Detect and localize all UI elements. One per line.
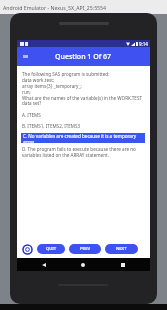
button[interactable]: Open navigation menu bbox=[19, 50, 32, 63]
staticText: Question 1 Of 67 bbox=[55, 52, 111, 62]
staticText: NEXT bbox=[116, 246, 127, 252]
staticText: D. The program fails to execute because … bbox=[22, 146, 146, 159]
button[interactable]: Bookmark question bbox=[21, 243, 33, 255]
staticText: run; bbox=[22, 89, 31, 95]
button[interactable]: Home bbox=[76, 258, 90, 271]
staticText: The following SAS program is submitted: bbox=[22, 71, 110, 77]
button[interactable]: PREV bbox=[69, 244, 101, 254]
staticText: QUIT bbox=[46, 246, 57, 252]
button[interactable]: NEXT bbox=[105, 244, 138, 254]
staticText: data work.test; bbox=[22, 77, 55, 83]
staticText: array items{3} _temporary_; bbox=[22, 83, 82, 89]
staticText: PREV bbox=[80, 246, 91, 252]
staticText: What are the names of the variable(s) in… bbox=[22, 95, 146, 106]
staticText: Android Emulator - Nexus_5X_API_25:5554 bbox=[3, 4, 106, 11]
button[interactable]: A. ITEMS bbox=[22, 112, 41, 118]
button[interactable]: B. ITEMS1, ITEMS2, ITEMS3 bbox=[22, 123, 81, 129]
button[interactable]: Recent apps bbox=[116, 258, 130, 271]
button[interactable]: D. The program fails to execute because … bbox=[22, 146, 146, 159]
button[interactable]: C. No variables are created because it i… bbox=[21, 133, 145, 143]
button[interactable]: QUIT bbox=[37, 244, 65, 254]
staticText: C. No variables are created because it i… bbox=[23, 133, 145, 143]
staticText: 9:14 bbox=[139, 41, 148, 47]
button[interactable]: Back bbox=[37, 258, 51, 271]
